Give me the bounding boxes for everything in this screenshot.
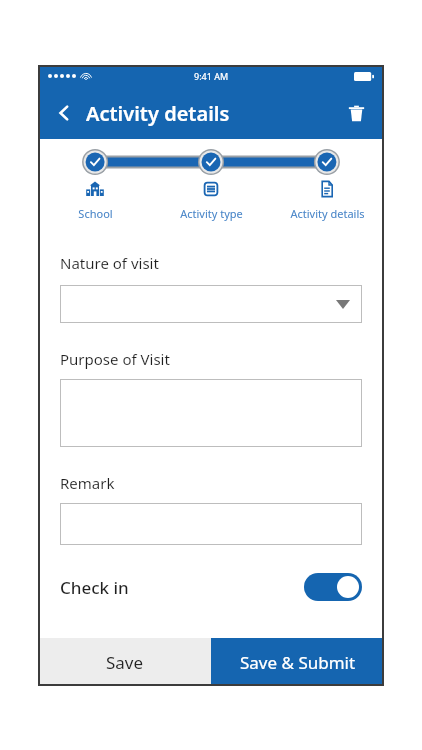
- staticText: Activity type: [180, 206, 243, 221]
- staticText: Nature of visit: [60, 253, 159, 273]
- staticText: School: [78, 206, 113, 221]
- button[interactable]: Activity type: [152, 179, 270, 221]
- staticText: 9:41 AM: [194, 70, 229, 82]
- staticText: Save & Submit: [240, 651, 356, 674]
- staticText: Save: [106, 651, 144, 674]
- staticText: Purpose of Visit: [60, 349, 170, 369]
- staticText: Activity details: [86, 100, 230, 127]
- button[interactable]: Activity details: [270, 179, 384, 221]
- button[interactable]: Back: [46, 95, 82, 131]
- button[interactable]: Check in: [60, 567, 362, 607]
- button[interactable]: Nature of visit dropdown: [60, 285, 362, 323]
- button[interactable]: School: [38, 179, 152, 221]
- staticText: Remark: [60, 473, 115, 493]
- button[interactable]: Delete: [338, 95, 374, 131]
- button[interactable]: Save & Submit: [211, 638, 384, 686]
- button[interactable]: Save: [38, 638, 211, 686]
- staticText: Activity details: [290, 206, 365, 221]
- button[interactable]: [60, 503, 362, 545]
- staticText: Check in: [60, 576, 129, 599]
- button[interactable]: [60, 379, 362, 447]
